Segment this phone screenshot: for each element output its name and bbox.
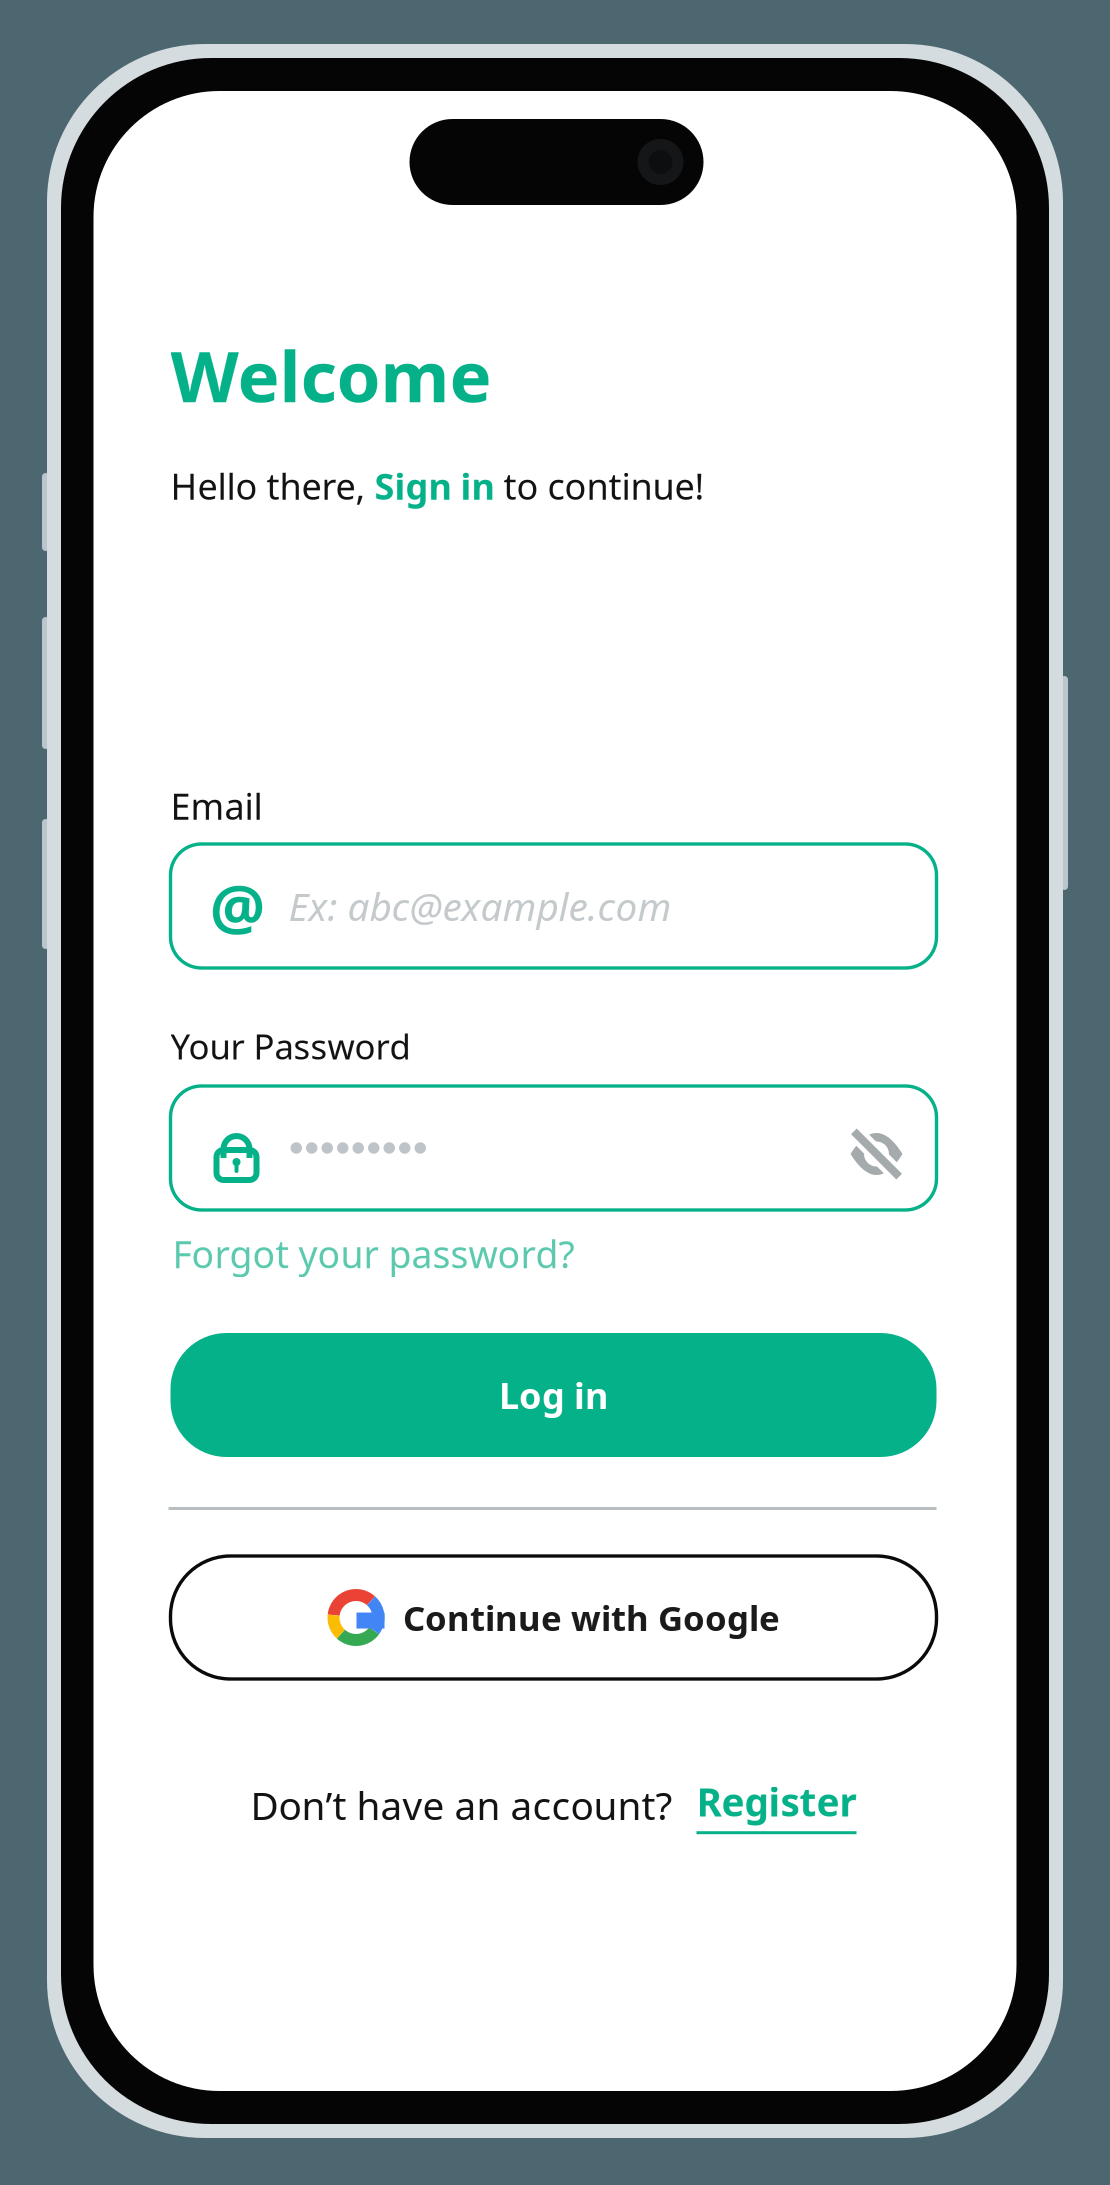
button[interactable]: Log in	[170, 1333, 936, 1457]
staticText: Forgot your password?	[172, 1229, 574, 1279]
button[interactable]: Register	[696, 1776, 856, 1834]
staticText: Log in	[499, 1371, 608, 1419]
staticText: Don’t have an account?	[250, 1779, 672, 1831]
staticText: Ex: abc@example.com	[288, 880, 671, 932]
button[interactable]: Forgot your password?	[172, 1229, 574, 1279]
button[interactable]: Your Password	[170, 1086, 936, 1210]
staticText: Email	[170, 782, 262, 830]
staticText: Sign in	[374, 462, 494, 510]
staticText: Continue with Google	[403, 1594, 780, 1640]
staticText: @	[210, 865, 265, 947]
button[interactable]: Continue with Google	[170, 1556, 936, 1679]
button[interactable]: Show password	[832, 1110, 920, 1198]
staticText: Register	[696, 1776, 856, 1827]
staticText: Hello there,	[170, 462, 374, 510]
staticText: Welcome	[170, 328, 491, 422]
staticText: to continue!	[494, 462, 704, 510]
staticText: Your Password	[170, 1023, 410, 1069]
button[interactable]: Email	[170, 844, 936, 968]
